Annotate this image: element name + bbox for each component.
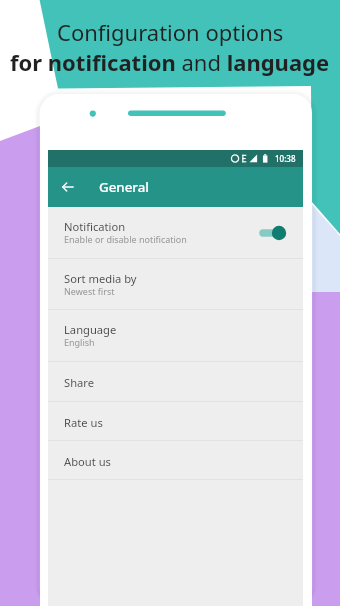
staticText: General — [99, 178, 149, 196]
staticText: Rate us — [64, 415, 103, 430]
staticText: for notification and language — [10, 47, 330, 77]
button[interactable]: Sort media by — [48, 259, 303, 309]
button[interactable]: Toggle notification — [254, 224, 288, 242]
staticText: Share — [64, 375, 95, 390]
staticText: Sort media by — [64, 271, 137, 286]
button[interactable]: Language — [48, 310, 303, 361]
staticText: About us — [64, 454, 111, 469]
staticText: Configuration options — [57, 17, 284, 47]
button[interactable]: Back — [56, 175, 80, 199]
staticText: Language — [64, 322, 117, 337]
button[interactable]: Share — [48, 362, 303, 401]
button[interactable]: Rate us — [48, 402, 303, 440]
staticText: Notification — [64, 219, 126, 234]
staticText: English — [64, 336, 95, 348]
staticText: Newest first — [64, 285, 115, 297]
button[interactable]: Notification — [48, 207, 303, 258]
staticText: 10:38 — [275, 153, 296, 164]
staticText: Enable or disable notification — [64, 233, 187, 245]
button[interactable]: About us — [48, 441, 303, 479]
